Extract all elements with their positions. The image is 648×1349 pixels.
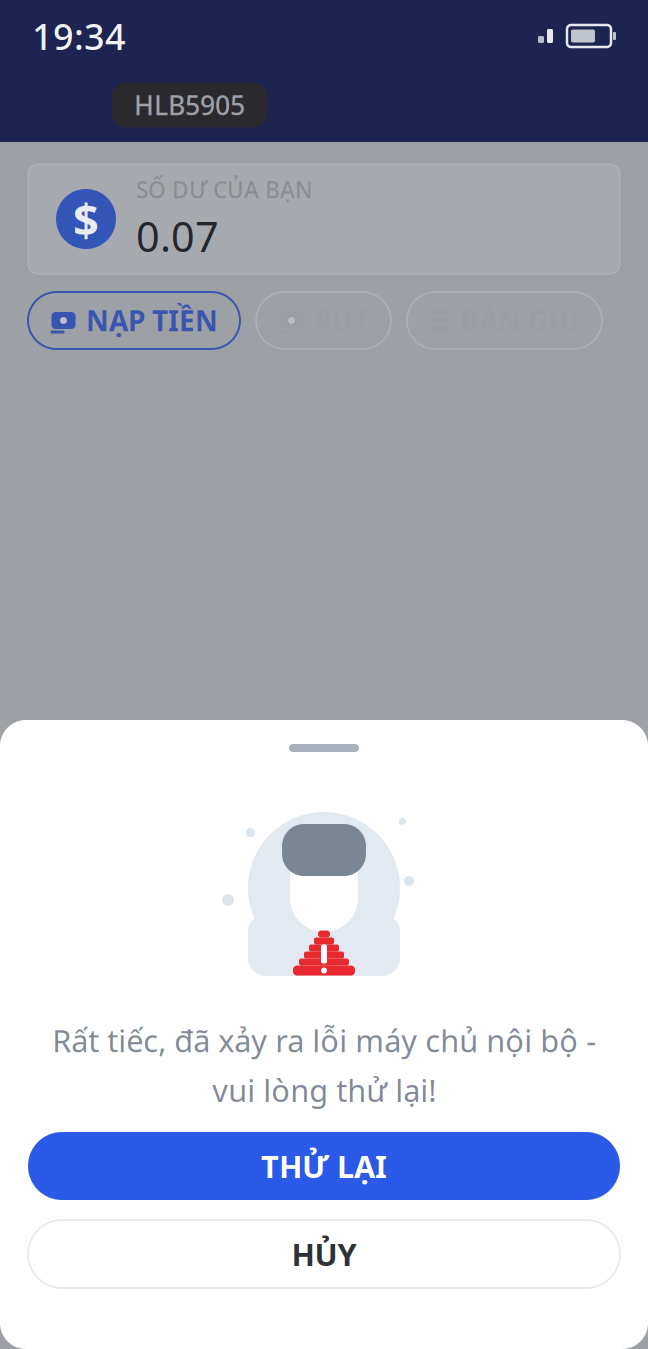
button[interactable]: BẢN GHI (407, 292, 602, 349)
staticText: 19:34 (32, 12, 126, 60)
staticText: HỦY (291, 1234, 356, 1274)
staticText: Rất tiếc, đã xảy ra lỗi máy chủ nội bộ -… (52, 1020, 596, 1110)
button[interactable]: HỦY (28, 1220, 620, 1288)
staticText: SỐ DƯ CỦA BẠN (136, 174, 313, 205)
staticText: 0.07 (136, 209, 219, 263)
staticText: $ (73, 189, 99, 249)
staticText: THỬ LẠI (261, 1146, 387, 1186)
button[interactable]: THỬ LẠI (28, 1132, 620, 1200)
button[interactable]: NẠP TIỀN (28, 292, 240, 349)
button[interactable]: RÚT (256, 292, 391, 349)
staticText: NẠP TIỀN (86, 302, 218, 339)
staticText: HLB5905 (134, 87, 245, 123)
